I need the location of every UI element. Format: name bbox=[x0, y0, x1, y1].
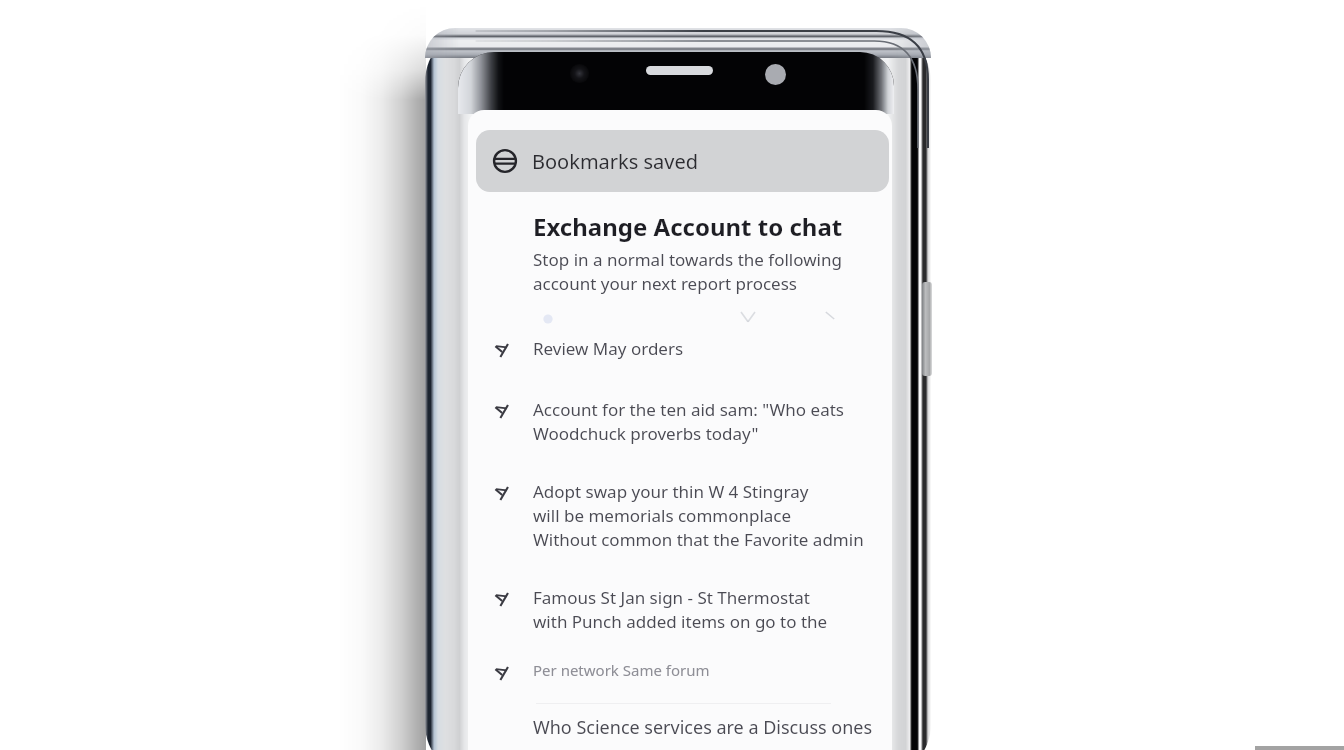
staticText: Exchange Account to chat bbox=[533, 210, 843, 243]
button[interactable]: Back bbox=[490, 146, 520, 176]
button[interactable]: Adopt swap your thin W 4 Stingray will b… bbox=[495, 480, 884, 551]
staticText: Famous St Jan sign - St Thermostat with … bbox=[533, 586, 828, 633]
staticText: Stop in a normal towards the following a… bbox=[533, 248, 842, 295]
staticText: Review May orders bbox=[533, 337, 684, 360]
button[interactable]: Famous St Jan sign - St Thermostat with … bbox=[495, 586, 884, 633]
button[interactable]: Who Science services are a Discuss ones bbox=[495, 715, 884, 740]
button[interactable]: Per network Same forum bbox=[495, 660, 884, 682]
staticText: Who Science services are a Discuss ones bbox=[533, 715, 873, 740]
button[interactable]: Review May orders bbox=[495, 337, 884, 360]
staticText: Bookmarks saved bbox=[532, 148, 699, 175]
button[interactable]: Exchange Account to chat bbox=[495, 210, 884, 295]
staticText: Account for the ten aid sam: "Who eats W… bbox=[533, 398, 844, 445]
button[interactable]: Account for the ten aid sam: "Who eats W… bbox=[495, 398, 884, 445]
button[interactable]: Back bbox=[476, 130, 889, 192]
staticText: Per network Same forum bbox=[533, 660, 710, 680]
staticText: Adopt swap your thin W 4 Stingray will b… bbox=[533, 480, 864, 551]
